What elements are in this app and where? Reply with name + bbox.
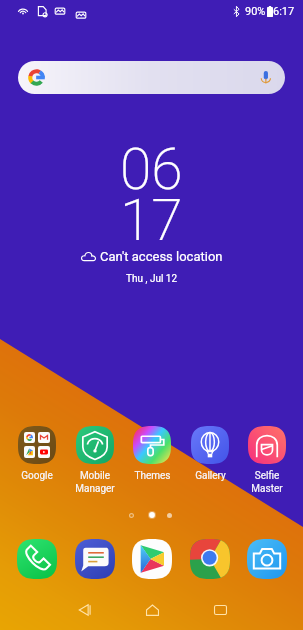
staticText: 17 <box>120 187 183 254</box>
staticText: Gallery <box>195 470 226 482</box>
button[interactable]: Selfie Master <box>239 426 295 494</box>
staticText: Thu , Jul 12 <box>126 273 178 285</box>
button[interactable]: Play Store <box>132 539 172 579</box>
button[interactable]: Messages <box>75 539 115 579</box>
button[interactable]: Back <box>65 591 103 629</box>
button[interactable]: Gallery <box>182 426 238 482</box>
staticText: 06 <box>120 136 183 203</box>
button[interactable]: Voice search <box>18 61 285 94</box>
staticText: 6:17 <box>273 5 295 18</box>
button[interactable]: Recents <box>201 591 239 629</box>
button[interactable]: Phone <box>17 539 57 579</box>
button[interactable]: Chrome <box>190 539 230 579</box>
button[interactable]: Google <box>9 426 65 482</box>
button[interactable]: Camera <box>247 539 287 579</box>
staticText: Mobile Manager <box>75 470 115 494</box>
staticText: Themes <box>134 470 171 482</box>
other: Voice search <box>259 71 273 85</box>
staticText: Google <box>21 470 53 482</box>
staticText: 90% <box>245 5 266 18</box>
button[interactable]: Mobile Manager <box>67 426 123 494</box>
button[interactable]: Home <box>133 591 171 629</box>
staticText: Selfie Master <box>251 470 283 494</box>
button[interactable]: Themes <box>124 426 180 482</box>
staticText: Can't access location <box>100 249 223 264</box>
